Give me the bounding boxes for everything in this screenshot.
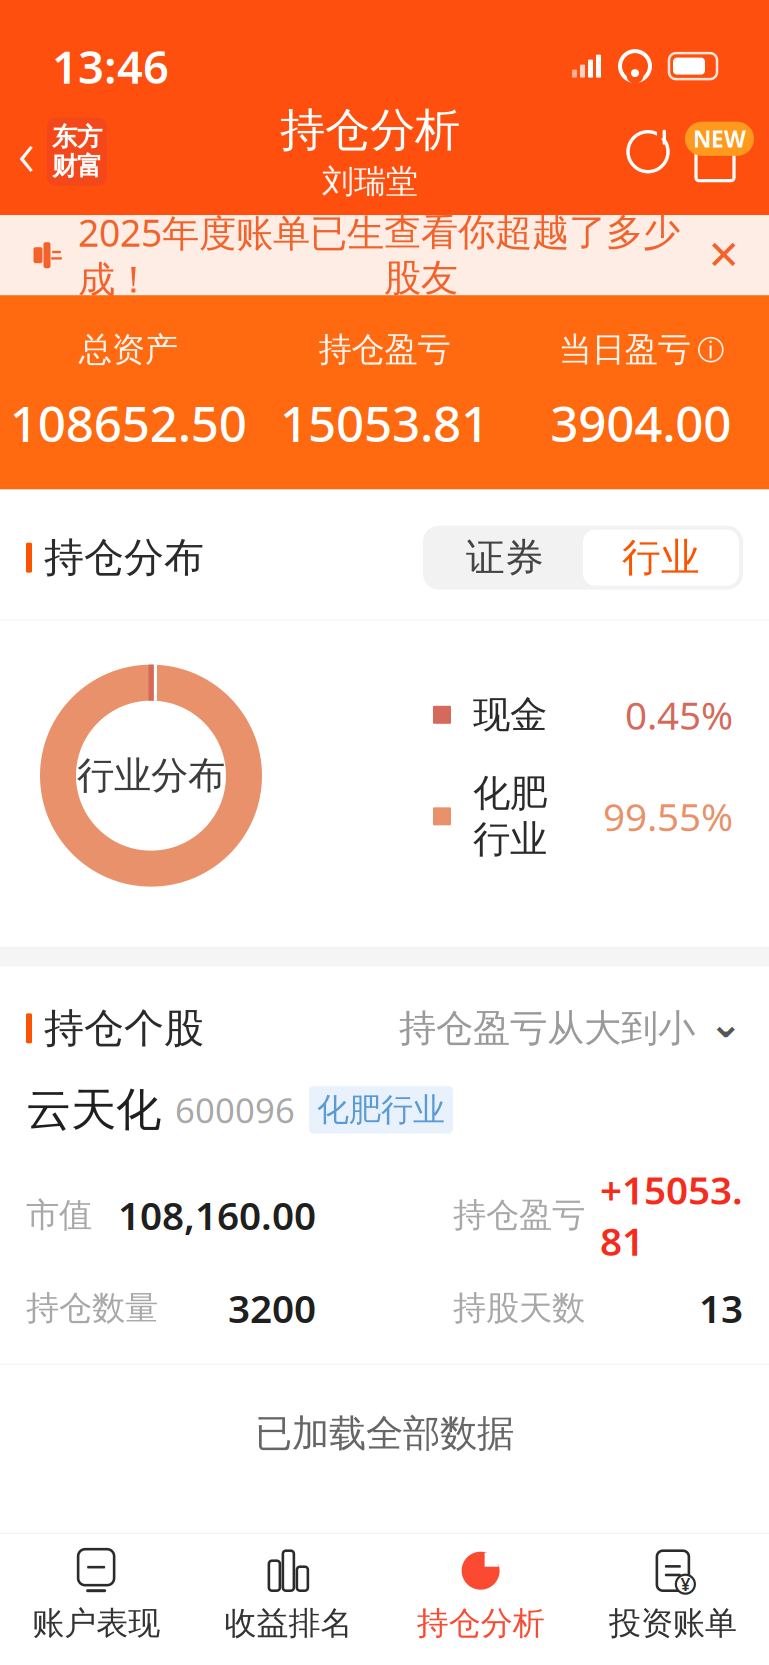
- staticText: 当日盈亏: [559, 329, 691, 370]
- staticText: NEW: [693, 124, 746, 154]
- button[interactable]: 持仓盈亏从大到小: [399, 1001, 743, 1056]
- staticText: 持仓盈亏从大到小: [399, 1005, 695, 1051]
- staticText: 财富: [52, 151, 102, 182]
- staticText: 行业分布: [77, 753, 225, 799]
- staticText: 账户表现: [32, 1604, 160, 1643]
- staticText: 化肥行业: [473, 770, 547, 862]
- staticText: 云天化: [26, 1082, 161, 1138]
- staticText: 查看你超越了多少股友: [384, 209, 680, 301]
- staticText: 108652.50: [10, 390, 247, 456]
- staticText: 持仓盈亏: [318, 329, 450, 370]
- button[interactable]: 2025年度账单已生成！: [0, 215, 769, 295]
- staticText: 持仓个股: [44, 1004, 204, 1053]
- staticText: 市值: [26, 1195, 92, 1235]
- button[interactable]: 云天化: [0, 1082, 769, 1364]
- button[interactable]: 账户表现: [0, 1534, 192, 1653]
- staticText: 15053.81: [280, 390, 489, 456]
- staticText: 108,160.00: [118, 1189, 316, 1241]
- staticText: 3200: [228, 1282, 316, 1334]
- staticText: 持仓分布: [44, 533, 204, 582]
- staticText: 已加载全部数据: [255, 1411, 514, 1457]
- staticText: 持仓分析: [417, 1604, 545, 1643]
- staticText: 行业: [622, 534, 700, 581]
- button[interactable]: 持仓分析: [384, 1534, 577, 1653]
- staticText: ✕: [707, 232, 741, 278]
- staticText: 600096: [175, 1087, 295, 1133]
- staticText: 2025年度账单已生成！: [78, 207, 384, 303]
- staticText: 刘瑞堂: [322, 162, 418, 201]
- staticText: 13: [699, 1282, 743, 1334]
- button[interactable]: 分享: [683, 122, 747, 182]
- staticText: 持股天数: [453, 1288, 585, 1328]
- staticText: i: [708, 335, 714, 365]
- button[interactable]: ¥: [577, 1534, 769, 1653]
- staticText: 总资产: [79, 329, 178, 370]
- button[interactable]: 行业: [583, 530, 739, 586]
- staticText: 13:46: [52, 36, 169, 96]
- staticText: 持仓分析: [280, 102, 460, 158]
- staticText: 东方: [52, 122, 102, 153]
- button[interactable]: 证券: [427, 530, 583, 586]
- button[interactable]: 刷新: [623, 126, 673, 178]
- staticText: 持仓数量: [26, 1288, 158, 1328]
- staticText: 99.55%: [603, 791, 733, 842]
- button[interactable]: 收益排名: [192, 1534, 384, 1653]
- staticText: ‹: [18, 109, 35, 194]
- staticText: 0.45%: [625, 689, 733, 740]
- staticText: 持仓盈亏: [453, 1195, 585, 1235]
- staticText: 投资账单: [609, 1604, 737, 1643]
- staticText: 现金: [473, 692, 547, 738]
- staticText: 收益排名: [224, 1604, 352, 1643]
- staticText: 证券: [466, 534, 544, 581]
- staticText: +15053.81: [600, 1164, 743, 1266]
- staticText: 化肥行业: [317, 1090, 445, 1129]
- staticText: 3904.00: [550, 390, 731, 456]
- staticText: ¥: [680, 1573, 690, 1596]
- button[interactable]: 返回 东方财富: [0, 117, 117, 187]
- staticText: ⌄: [709, 1001, 743, 1046]
